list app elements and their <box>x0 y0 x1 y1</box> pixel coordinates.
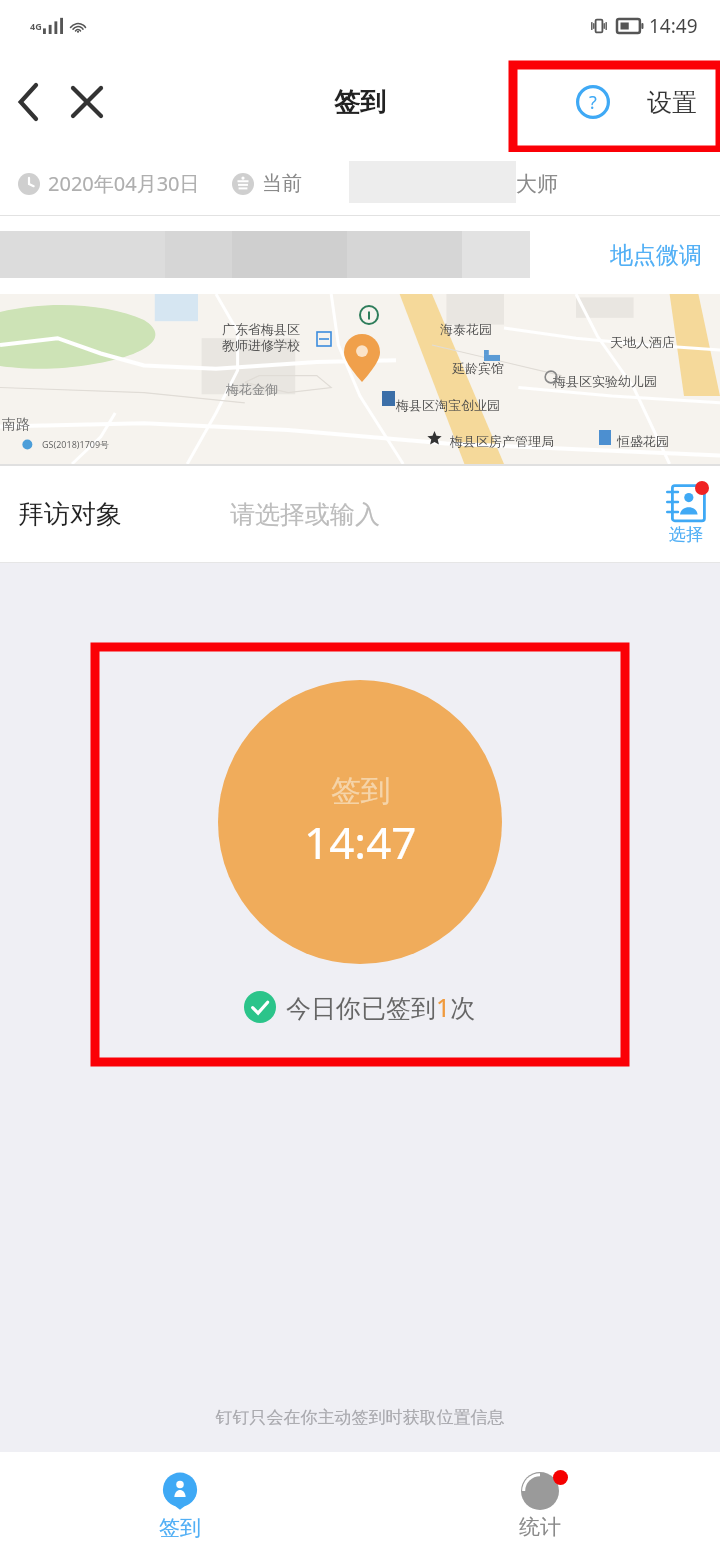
staticText: 广东省梅县区 <box>222 321 300 337</box>
button[interactable]: 设置 <box>624 52 720 152</box>
staticText: 梅县区实验幼儿园 <box>553 373 657 389</box>
staticText: 海泰花园 <box>440 321 492 337</box>
staticText: 梅花金御 <box>226 381 278 397</box>
staticText: 设置 <box>647 87 697 118</box>
button[interactable]: 选择 <box>666 484 706 545</box>
button[interactable]: Close <box>58 73 116 131</box>
staticText: 天地人酒店 <box>610 334 675 350</box>
staticText: 梅县区淘宝创业园 <box>396 397 500 413</box>
staticText: 4G <box>30 20 42 32</box>
staticText: 14:49 <box>649 13 698 39</box>
staticText: 统计 <box>519 1514 561 1540</box>
staticText: 地点微调 <box>610 241 702 270</box>
staticText: 当前 <box>262 171 302 196</box>
staticText: ? <box>589 90 597 115</box>
staticText: 大师 <box>516 171 558 197</box>
staticText: 请选择或输入 <box>230 499 380 530</box>
button[interactable]: 签到 <box>0 1452 360 1560</box>
staticText: 签到 <box>334 86 386 119</box>
button[interactable]: Help <box>562 71 624 133</box>
button[interactable]: 地点微调 <box>610 216 720 294</box>
button[interactable]: Back <box>0 73 58 131</box>
staticText: 梅县区房产管理局 <box>450 433 554 449</box>
staticText: 钉钉只会在你主动签到时获取位置信息 <box>0 1407 720 1428</box>
staticText: GS(2018)1709号 <box>42 438 110 450</box>
staticText: 教师进修学校 <box>222 337 300 353</box>
staticText: 2020年04月30日 <box>48 170 200 197</box>
staticText: 14:47 <box>304 812 417 872</box>
staticText: 签到 <box>159 1515 201 1541</box>
staticText: 恒盛花园 <box>617 433 669 449</box>
staticText: 签到 <box>331 772 391 810</box>
staticText: 选择 <box>669 524 703 545</box>
staticText: 今日你已签到1次 <box>286 990 476 1024</box>
button[interactable]: 请选择或输入 <box>230 466 560 562</box>
button[interactable]: 统计 <box>360 1452 720 1560</box>
staticText: 拜访对象 <box>18 498 122 531</box>
staticText: 南路 <box>2 416 30 434</box>
button[interactable]: 签到 <box>218 680 502 964</box>
staticText: 延龄宾馆 <box>452 360 504 376</box>
